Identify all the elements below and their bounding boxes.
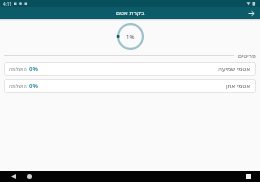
staticText: הושלמה bbox=[9, 66, 27, 72]
staticText: פריטים bbox=[238, 52, 256, 59]
button[interactable] bbox=[26, 173, 33, 180]
staticText: 0% bbox=[29, 65, 38, 73]
button[interactable]: הושלמה bbox=[4, 62, 256, 76]
staticText: 4:11 bbox=[3, 1, 12, 7]
staticText: בקרת אטם bbox=[116, 9, 145, 17]
staticText: אטמי שמיעה bbox=[218, 65, 251, 73]
button[interactable] bbox=[245, 173, 252, 180]
staticText: 0% bbox=[29, 82, 38, 90]
staticText: הושלמה bbox=[9, 83, 27, 89]
button[interactable] bbox=[10, 173, 17, 180]
button[interactable] bbox=[247, 9, 256, 18]
staticText: 1% bbox=[126, 33, 135, 41]
staticText: אטמי אוזן bbox=[226, 82, 251, 90]
button[interactable]: הושלמה bbox=[4, 79, 256, 93]
